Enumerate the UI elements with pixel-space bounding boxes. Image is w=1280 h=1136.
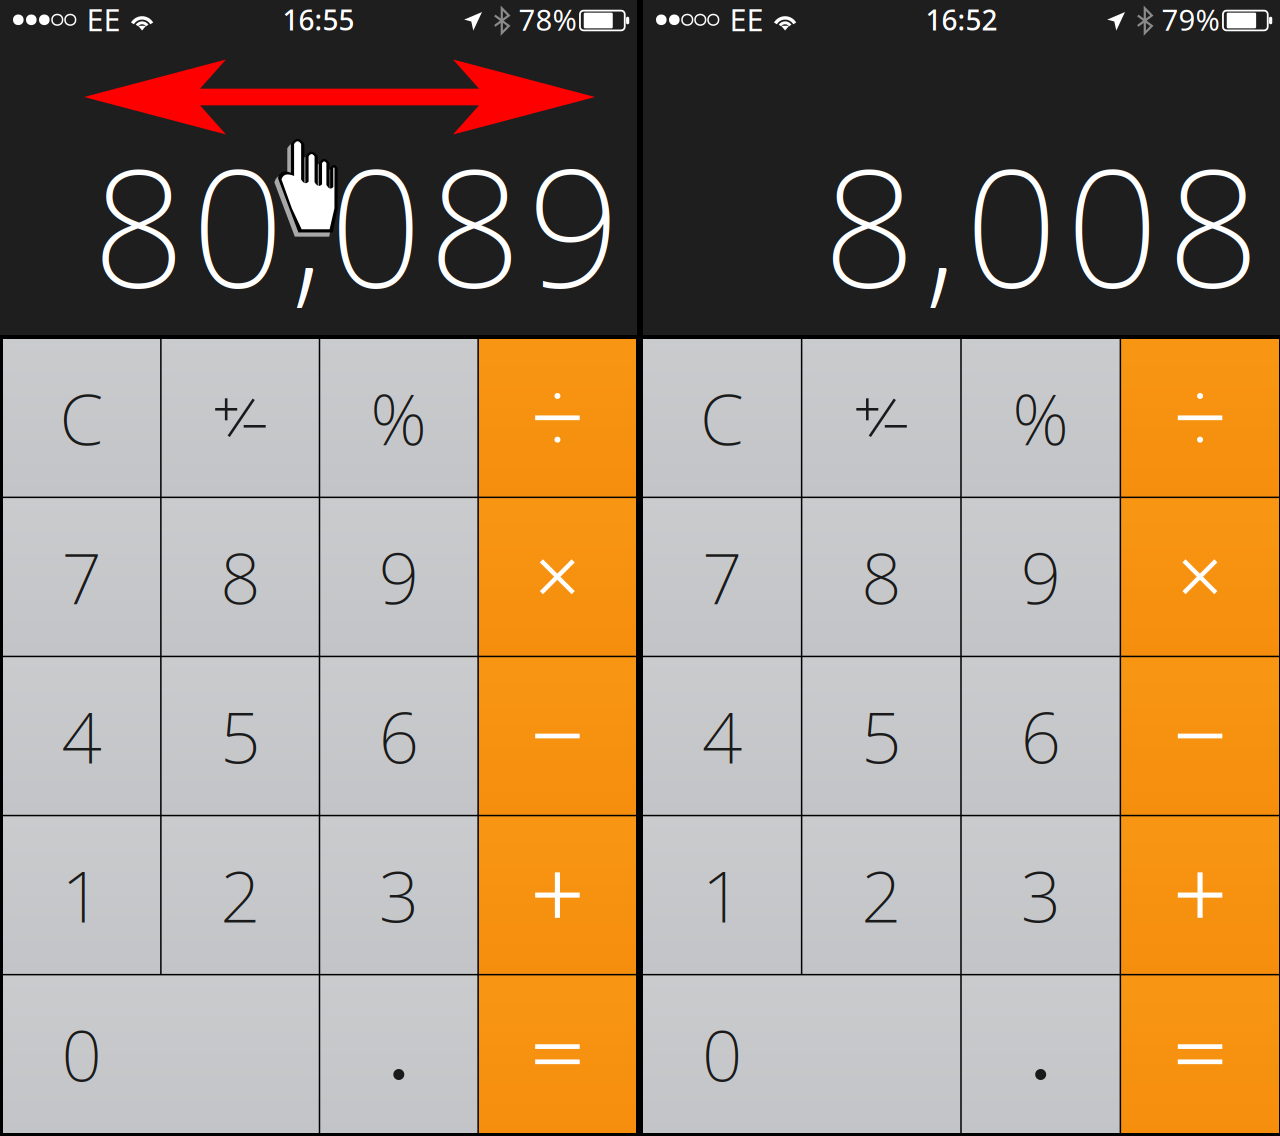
staticText: % [370,371,427,465]
button[interactable]: Multiply [479,498,636,656]
staticText: C [60,371,104,465]
button[interactable]: Equals [1121,975,1279,1133]
button[interactable]: 5 [162,657,319,815]
button[interactable]: Subtract [1121,657,1279,815]
staticText: 5 [220,689,260,783]
button[interactable]: 5 [802,657,960,815]
button[interactable]: 0 [643,975,960,1133]
staticText: 6 [1021,689,1061,783]
button[interactable]: Change sign [802,339,960,497]
button[interactable]: Change sign [162,339,319,497]
button[interactable]: Subtract [479,657,636,815]
button[interactable]: Add [479,816,636,974]
staticText: 16:52 [925,1,997,38]
button[interactable]: 9 [320,498,477,656]
button[interactable]: 3 [962,816,1120,974]
button[interactable]: 6 [962,657,1120,815]
staticText: 78% [518,0,576,39]
staticText: 4 [702,689,742,783]
staticText: 1 [702,848,742,942]
button[interactable]: 3 [320,816,477,974]
button[interactable]: 4 [643,657,801,815]
button[interactable]: 7 [3,498,160,656]
button[interactable]: Decimal point [320,975,477,1133]
button[interactable]: 8 [802,498,960,656]
button[interactable]: 1 [643,816,801,974]
button[interactable]: Decimal point [962,975,1120,1133]
staticText: 4 [62,689,102,783]
staticText: 79% [1161,0,1219,39]
staticText: 6 [379,689,419,783]
staticText: 9 [379,530,419,624]
staticText: 0 [702,1007,742,1101]
button[interactable]: Divide [1121,339,1279,497]
staticText: 16:55 [282,1,354,38]
button[interactable]: 8 [162,498,319,656]
staticText: 7 [702,530,742,624]
button[interactable]: Add [1121,816,1279,974]
button[interactable]: 2 [802,816,960,974]
button[interactable]: 7 [643,498,801,656]
button[interactable]: 6 [320,657,477,815]
button[interactable]: 4 [3,657,160,815]
staticText: 2 [220,848,260,942]
staticText: EE [86,0,120,40]
staticText: 8 [861,530,901,624]
button[interactable]: 2 [162,816,319,974]
staticText: EE [729,0,763,40]
staticText: 9 [1021,530,1061,624]
button[interactable]: 0 [3,975,319,1133]
staticText: 8,008 [823,116,1260,332]
button[interactable]: 1 [3,816,160,974]
button[interactable]: Equals [479,975,636,1133]
staticText: 8 [220,530,260,624]
staticText: 0 [62,1007,102,1101]
button[interactable]: C [3,339,160,497]
staticText: 7 [62,530,102,624]
staticText: 5 [861,689,901,783]
staticText: 1 [62,848,102,942]
button[interactable]: Divide [479,339,636,497]
button[interactable]: % [320,339,477,497]
button[interactable]: 9 [962,498,1120,656]
staticText: 3 [1021,848,1061,942]
button[interactable]: % [962,339,1120,497]
staticText: C [700,371,744,465]
button[interactable]: Multiply [1121,498,1279,656]
staticText: 2 [861,848,901,942]
staticText: 80,089 [92,116,620,332]
staticText: 3 [379,848,419,942]
staticText: % [1012,371,1069,465]
button[interactable]: C [643,339,801,497]
